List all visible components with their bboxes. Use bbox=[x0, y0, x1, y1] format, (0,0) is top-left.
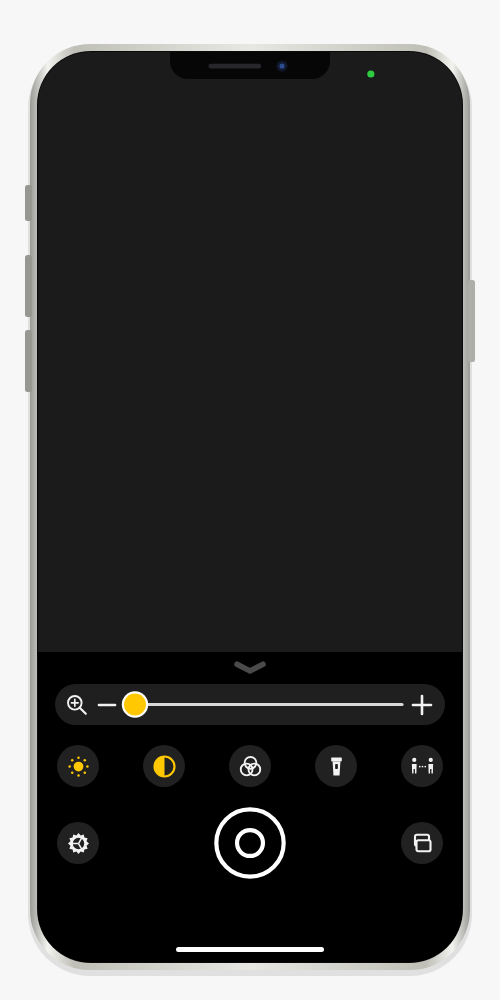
button[interactable]: Zoom in bbox=[410, 693, 434, 717]
button[interactable]: Color filters bbox=[229, 745, 271, 787]
button[interactable]: Settings bbox=[57, 822, 99, 864]
button[interactable] bbox=[123, 684, 402, 725]
button[interactable]: Collapse controls bbox=[38, 652, 462, 682]
button[interactable]: People detection bbox=[401, 745, 443, 787]
button[interactable]: Contrast bbox=[143, 745, 185, 787]
button[interactable]: Zoom bbox=[55, 684, 445, 725]
button[interactable]: Multiple views bbox=[401, 822, 443, 864]
button[interactable]: Flashlight bbox=[315, 745, 357, 787]
button[interactable]: Zoom out bbox=[97, 695, 117, 715]
button[interactable]: Brightness bbox=[57, 745, 99, 787]
button[interactable]: Capture bbox=[213, 806, 287, 880]
